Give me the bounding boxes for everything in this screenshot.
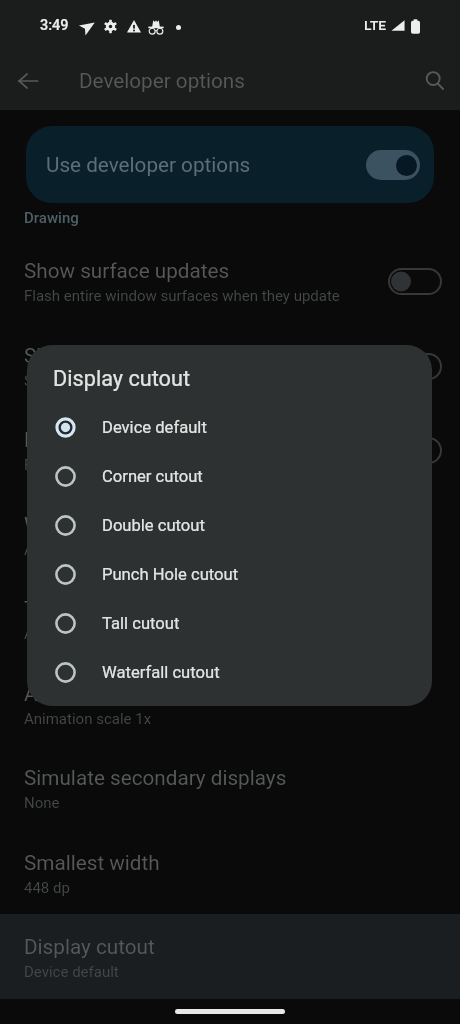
button[interactable]: Show surface updates bbox=[0, 238, 460, 323]
staticText: Device default bbox=[24, 963, 119, 981]
staticText: Double cutout bbox=[102, 516, 205, 535]
staticText: Drawing bbox=[24, 209, 79, 227]
staticText: Window animation scale bbox=[24, 513, 249, 537]
staticText: Waterfall cutout bbox=[102, 663, 220, 682]
button[interactable]: Simulate secondary displays bbox=[0, 745, 460, 830]
staticText: Flash entire window surfaces when they u… bbox=[24, 287, 340, 305]
staticText: Device default bbox=[102, 418, 207, 437]
button[interactable]: Force RTL layout direction bbox=[0, 407, 460, 492]
button[interactable]: Show layout bounds bbox=[0, 323, 460, 408]
staticText: Animation scale 1x bbox=[24, 625, 152, 643]
button[interactable]: Device default bbox=[27, 403, 432, 452]
button[interactable]: Use developer options bbox=[26, 126, 434, 203]
staticText: Developer options bbox=[79, 69, 245, 93]
button[interactable]: Back bbox=[8, 61, 48, 101]
staticText: Show layout bounds bbox=[24, 344, 210, 368]
staticText: Punch Hole cutout bbox=[102, 565, 239, 584]
staticText: Tall cutout bbox=[102, 614, 180, 633]
staticText: 3:49 bbox=[40, 17, 69, 34]
staticText: Force RTL layout direction bbox=[24, 428, 263, 452]
button[interactable]: Window animation scale bbox=[0, 492, 460, 577]
button[interactable]: Punch Hole cutout bbox=[27, 550, 432, 599]
button[interactable]: Search bbox=[415, 60, 455, 100]
staticText: 448 dp bbox=[24, 879, 70, 897]
staticText: Corner cutout bbox=[102, 467, 203, 486]
button[interactable]: Animator duration scale bbox=[0, 661, 460, 746]
staticText: None bbox=[24, 794, 60, 812]
button[interactable]: Smallest width bbox=[0, 830, 460, 915]
button[interactable]: Double cutout bbox=[27, 501, 432, 550]
button[interactable]: Corner cutout bbox=[27, 452, 432, 501]
staticText: Display cutout bbox=[53, 366, 191, 391]
button[interactable]: Display cutout bbox=[0, 914, 460, 999]
staticText: Show surface updates bbox=[24, 259, 230, 283]
staticText: Smallest width bbox=[24, 851, 160, 875]
staticText: Force screen layout direction to RTL for… bbox=[24, 456, 356, 474]
staticText: Simulate secondary displays bbox=[24, 766, 287, 790]
staticText: LTE bbox=[364, 17, 387, 33]
staticText: Transition animation scale bbox=[24, 597, 267, 621]
staticText: Show clip bounds, margins, etc. bbox=[24, 372, 235, 390]
staticText: Use developer options bbox=[46, 153, 251, 177]
button[interactable]: Waterfall cutout bbox=[27, 648, 432, 697]
button[interactable]: Transition animation scale bbox=[0, 576, 460, 661]
staticText: Animator duration scale bbox=[24, 682, 244, 706]
staticText: Display cutout bbox=[24, 935, 155, 959]
staticText: Animation scale 1x bbox=[24, 710, 152, 728]
button[interactable]: Tall cutout bbox=[27, 599, 432, 648]
staticText: Animation scale 1x bbox=[24, 541, 152, 559]
